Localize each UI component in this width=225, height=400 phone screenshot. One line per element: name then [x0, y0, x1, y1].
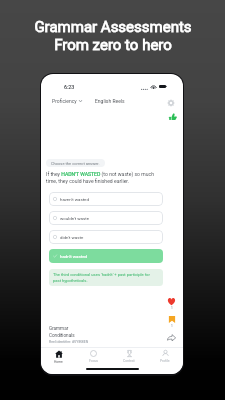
button[interactable]: haven't wasted [49, 192, 163, 206]
staticText: Home [54, 360, 63, 364]
staticText: Reel identifier: #VYIKBEN [49, 340, 89, 344]
button[interactable]: Settings [165, 97, 177, 109]
button[interactable]: English Reels [92, 95, 128, 107]
staticText: If they HADN'T WASTED (to not waste) so … [46, 171, 164, 184]
staticText: Grammar Assessments [34, 18, 192, 36]
staticText: Grammar [49, 326, 69, 331]
button[interactable]: Share [164, 333, 179, 345]
button[interactable]: wouldn't waste [49, 211, 163, 225]
staticText: 1 [171, 306, 173, 310]
staticText: Choose the correct answer. [51, 161, 100, 166]
staticText: 1 [171, 324, 173, 328]
button[interactable]: didn't waste [49, 230, 163, 244]
staticText: didn't waste [60, 235, 84, 240]
button[interactable]: Like [167, 111, 179, 123]
staticText: English Reels [95, 98, 125, 104]
button[interactable]: Profile [147, 348, 183, 365]
button[interactable]: hadn't wasted [49, 249, 163, 263]
staticText: Profile [160, 359, 170, 363]
staticText: 6:23 [64, 84, 75, 90]
staticText: Contest [123, 359, 135, 363]
staticText: wouldn't waste [60, 216, 89, 221]
staticText: The third conditional uses 'hadn't' + pa… [53, 272, 157, 283]
staticText: Proficiency [52, 98, 77, 104]
button[interactable]: Focus [76, 348, 111, 365]
button[interactable]: Contest [111, 348, 147, 365]
staticText: Conditionals [49, 333, 75, 338]
button[interactable]: Like [164, 295, 179, 310]
button[interactable]: Save [164, 314, 179, 328]
staticText: From zero to hero [54, 36, 172, 54]
button[interactable]: Proficiency [49, 95, 85, 107]
button[interactable]: Home [41, 348, 76, 365]
staticText: hadn't wasted [60, 254, 87, 259]
staticText: haven't wasted [60, 197, 89, 202]
staticText: Focus [89, 359, 98, 363]
